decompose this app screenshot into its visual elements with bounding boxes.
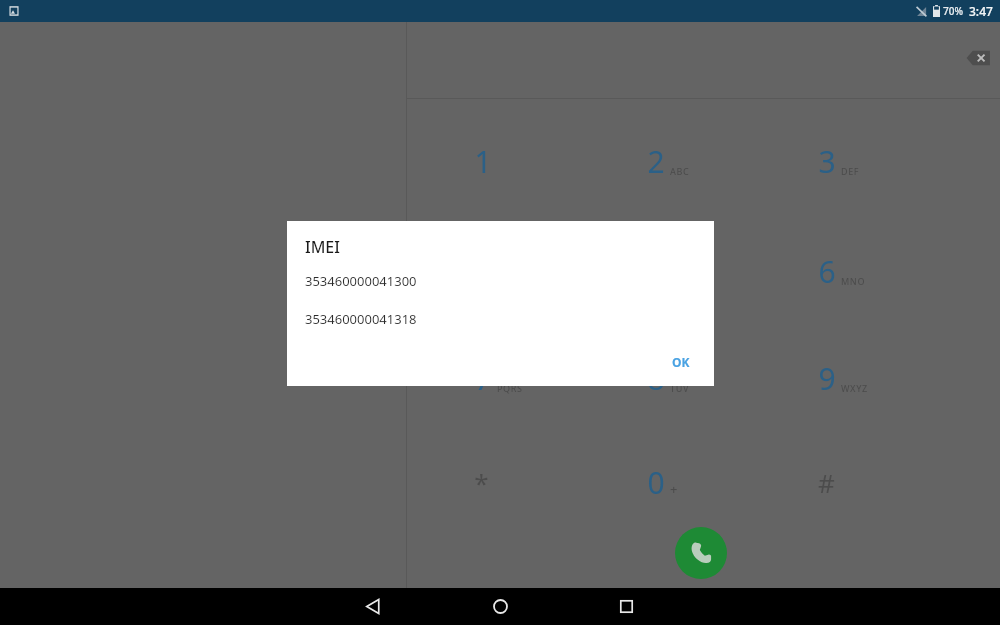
staticText: TUV <box>670 382 690 394</box>
button[interactable]: 7 <box>426 351 598 405</box>
staticText: 353460000041318 <box>305 310 417 328</box>
staticText: 2 <box>647 141 665 182</box>
staticText: * <box>474 465 489 500</box>
button[interactable]: Backspace <box>958 38 998 78</box>
button[interactable]: Home <box>475 588 525 625</box>
button[interactable]: 0 <box>599 455 771 509</box>
button[interactable]: OK <box>662 348 700 376</box>
staticText: OK <box>672 354 690 370</box>
staticText: ABC <box>670 165 690 177</box>
button[interactable]: 5 <box>599 244 771 298</box>
staticText: 3 <box>818 141 836 182</box>
staticText: 7 <box>474 358 492 399</box>
button[interactable]: 8 <box>599 351 771 405</box>
button[interactable]: 2 <box>599 134 771 188</box>
button[interactable]: Back <box>348 588 398 625</box>
staticText: # <box>818 465 835 500</box>
button[interactable]: 6 <box>770 244 942 298</box>
staticText: 9 <box>818 358 836 399</box>
button[interactable]: Call <box>675 527 727 579</box>
staticText: 6 <box>818 251 836 292</box>
staticText: 3:47 <box>969 3 993 19</box>
staticText: + <box>670 480 679 498</box>
staticText: 353460000041300 <box>305 272 417 290</box>
button[interactable]: 9 <box>770 351 942 405</box>
staticText: WXYZ <box>841 382 868 394</box>
staticText: 0 <box>647 462 665 503</box>
staticText: PQRS <box>497 382 523 394</box>
button[interactable]: 1 <box>426 134 598 188</box>
staticText: IMEI <box>305 236 340 258</box>
staticText: 8 <box>647 358 665 399</box>
staticText: 70% <box>943 4 963 18</box>
staticText: DEF <box>841 165 860 177</box>
button[interactable]: Recent apps <box>601 588 651 625</box>
staticText: 1 <box>474 141 492 182</box>
staticText: MNO <box>841 275 866 287</box>
button[interactable]: 3 <box>770 134 942 188</box>
